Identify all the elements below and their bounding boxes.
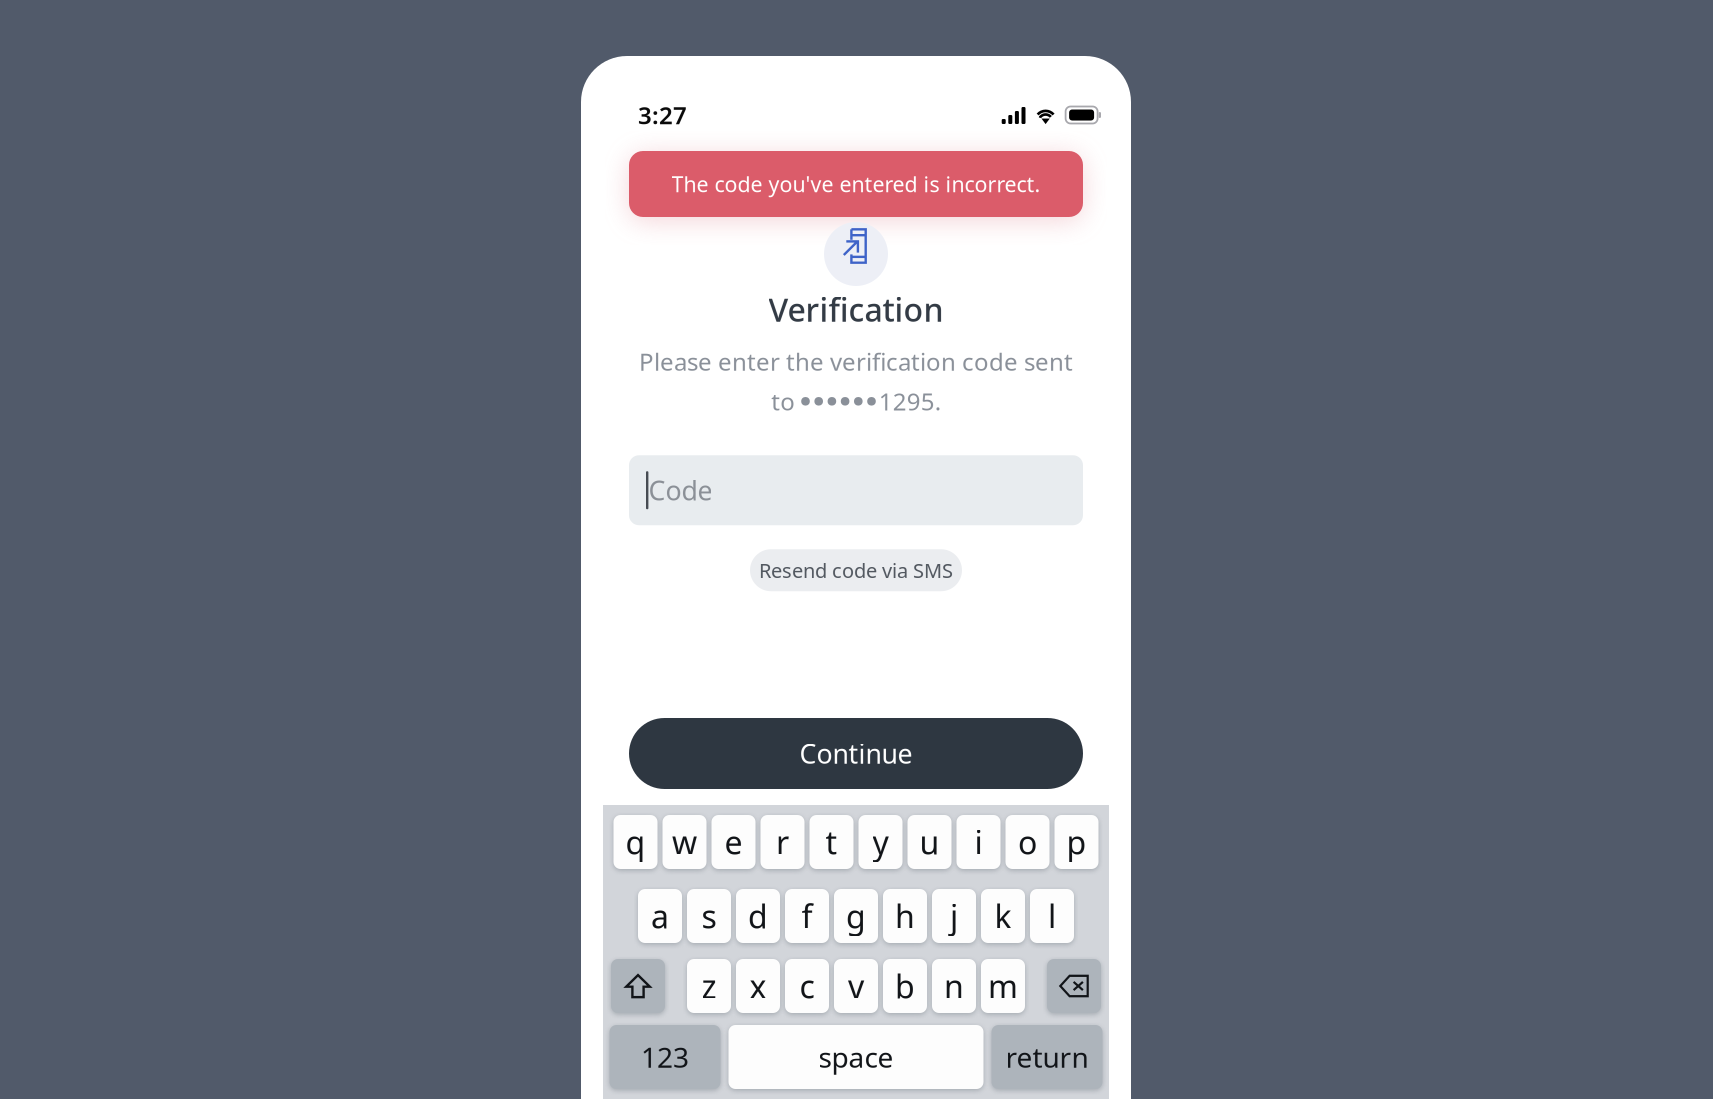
- button[interactable]: w: [662, 815, 706, 869]
- button[interactable]: space: [728, 1025, 983, 1089]
- button[interactable]: s: [687, 889, 731, 943]
- staticText: The code you've entered is incorrect.: [671, 170, 1040, 198]
- button[interactable]: o: [1005, 815, 1049, 869]
- button[interactable]: t: [809, 815, 853, 869]
- staticText: p: [1066, 821, 1086, 863]
- staticText: space: [818, 1038, 893, 1076]
- button[interactable]: m: [981, 959, 1025, 1013]
- staticText: d: [748, 895, 768, 937]
- staticText: return: [1005, 1038, 1088, 1076]
- staticText: e: [724, 821, 742, 863]
- button[interactable]: c: [785, 959, 829, 1013]
- staticText: v: [848, 965, 864, 1007]
- button[interactable]: h: [883, 889, 927, 943]
- staticText: y: [872, 821, 888, 863]
- staticText: j: [950, 895, 958, 937]
- staticText: Continue: [799, 736, 912, 771]
- button[interactable]: u: [907, 815, 951, 869]
- button[interactable]: e: [711, 815, 755, 869]
- staticText: 1295.: [879, 385, 941, 417]
- staticText: h: [895, 895, 915, 937]
- staticText: w: [672, 821, 697, 863]
- button[interactable]: y: [858, 815, 902, 869]
- button[interactable]: p: [1054, 815, 1098, 869]
- staticText: l: [1048, 895, 1056, 937]
- staticText: Code: [648, 472, 712, 508]
- staticText: f: [801, 895, 812, 937]
- staticText: o: [1018, 821, 1037, 863]
- button[interactable]: j: [932, 889, 976, 943]
- staticText: Resend code via SMS: [759, 557, 953, 584]
- staticText: m: [988, 965, 1018, 1007]
- button[interactable]: z: [687, 959, 731, 1013]
- button[interactable]: Continue: [629, 718, 1083, 789]
- button[interactable]: f: [785, 889, 829, 943]
- button[interactable]: return: [991, 1025, 1102, 1089]
- staticText: Please enter the verification code sent: [639, 345, 1073, 377]
- button[interactable]: 123: [609, 1025, 720, 1089]
- staticText: n: [944, 965, 964, 1007]
- staticText: to: [771, 385, 801, 417]
- staticText: r: [776, 821, 789, 863]
- staticText: z: [701, 965, 716, 1007]
- staticText: 123: [641, 1038, 689, 1076]
- staticText: Verification: [768, 288, 943, 330]
- staticText: t: [825, 821, 837, 863]
- button[interactable]: b: [883, 959, 927, 1013]
- staticText: g: [846, 895, 866, 937]
- button[interactable]: d: [736, 889, 780, 943]
- staticText: x: [749, 965, 766, 1007]
- button[interactable]: Shift: [611, 959, 665, 1013]
- button[interactable]: r: [760, 815, 804, 869]
- button[interactable]: a: [638, 889, 682, 943]
- staticText: s: [701, 895, 716, 937]
- button[interactable]: i: [956, 815, 1000, 869]
- button[interactable]: n: [932, 959, 976, 1013]
- staticText: k: [994, 895, 1011, 937]
- staticText: q: [625, 821, 645, 863]
- button[interactable]: Resend code via SMS: [750, 549, 962, 591]
- staticText: u: [919, 821, 939, 863]
- staticText: i: [974, 821, 982, 863]
- button[interactable]: q: [613, 815, 657, 869]
- button[interactable]: k: [981, 889, 1025, 943]
- button[interactable]: x: [736, 959, 780, 1013]
- staticText: c: [799, 965, 814, 1007]
- button[interactable]: v: [834, 959, 878, 1013]
- staticText: b: [895, 965, 915, 1007]
- button[interactable]: l: [1030, 889, 1074, 943]
- button[interactable]: g: [834, 889, 878, 943]
- staticText: a: [651, 895, 669, 937]
- staticText: 3:27: [638, 99, 687, 131]
- button[interactable]: Delete: [1047, 959, 1101, 1013]
